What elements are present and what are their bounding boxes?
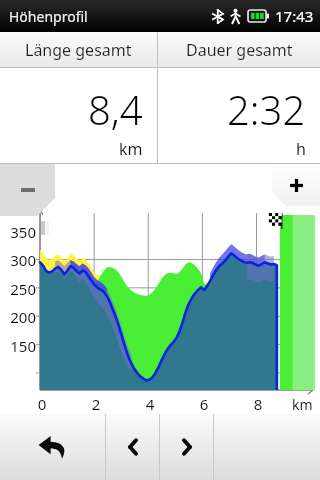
- staticText: Länge gesamt: [25, 39, 132, 61]
- staticText: 2: [91, 394, 101, 414]
- staticText: 150: [2, 336, 36, 356]
- staticText: 17:43: [275, 6, 314, 26]
- staticText: 6: [199, 394, 209, 414]
- staticText: 200: [2, 307, 36, 327]
- staticText: 300: [2, 250, 36, 270]
- staticText: km: [292, 395, 313, 414]
- button[interactable]: Back: [0, 414, 105, 480]
- staticText: 4: [145, 394, 155, 414]
- button[interactable]: Zoom in: [272, 164, 320, 206]
- staticText: 8: [253, 394, 263, 414]
- button[interactable]: [214, 414, 320, 480]
- staticText: 8,4: [88, 82, 143, 136]
- staticText: 0: [37, 394, 47, 414]
- button[interactable]: Next: [160, 414, 213, 480]
- staticText: h: [296, 138, 306, 160]
- button[interactable]: Länge gesamt: [0, 32, 157, 67]
- button[interactable]: 2:32: [158, 68, 320, 163]
- staticText: Dauer gesamt: [186, 39, 293, 61]
- button[interactable]: 8,4: [0, 68, 157, 163]
- staticText: Höhenprofil: [9, 7, 88, 26]
- button[interactable]: Previous: [106, 414, 159, 480]
- button[interactable]: Zoom out: [0, 164, 55, 216]
- staticText: 2:32: [227, 82, 306, 136]
- staticText: m: [18, 200, 32, 219]
- staticText: km: [119, 138, 143, 160]
- staticText: 250: [2, 279, 36, 299]
- button[interactable]: Dauer gesamt: [158, 32, 320, 67]
- staticText: 350: [2, 222, 36, 242]
